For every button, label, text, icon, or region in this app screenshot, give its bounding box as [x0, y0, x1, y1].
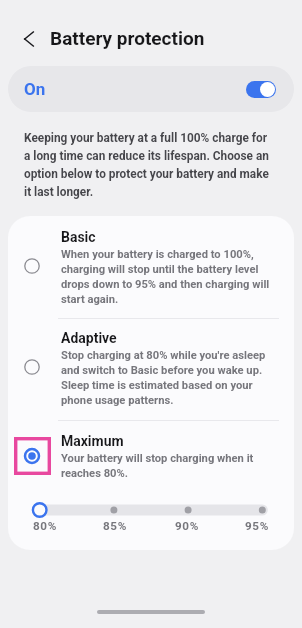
staticText: Battery protection — [50, 27, 205, 49]
staticText: Basic — [61, 229, 96, 245]
button[interactable]: On — [8, 66, 294, 112]
staticText: 85% — [95, 519, 135, 533]
staticText: Your battery will stop charging when it … — [61, 452, 261, 479]
button[interactable] — [8, 421, 294, 491]
staticText: Keeping your battery at a full 100% char… — [24, 131, 274, 199]
staticText: 95% — [237, 519, 277, 533]
staticText: When your battery is charged to 100%, ch… — [61, 248, 274, 305]
button[interactable] — [8, 319, 294, 420]
staticText: 90% — [167, 519, 207, 533]
button[interactable] — [8, 216, 294, 318]
staticText: Stop charging at 80% while you're asleep… — [61, 349, 277, 406]
staticText: 80% — [25, 519, 65, 533]
button[interactable]: Back — [10, 20, 47, 57]
staticText: Adaptive — [61, 330, 117, 346]
staticText: Maximum — [61, 433, 124, 449]
staticText: On — [24, 79, 46, 99]
